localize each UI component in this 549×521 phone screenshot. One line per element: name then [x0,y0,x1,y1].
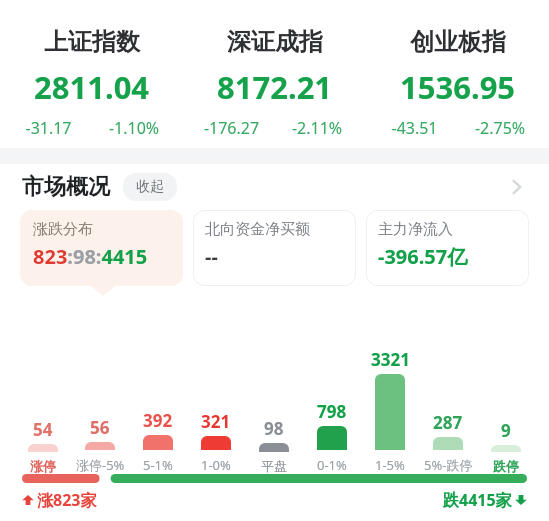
staticText: 98 [264,417,284,440]
button[interactable]: 深证成指 [183,0,366,148]
staticText: 54 [33,418,53,441]
staticText: 287 [433,411,463,434]
staticText: -43.51 [372,117,457,139]
staticText: 市场概况 [22,173,110,201]
staticText: 创业板指 [410,27,506,57]
button[interactable]: 市场概况 [0,164,549,210]
staticText: 392 [143,409,173,432]
staticText: -31.17 [6,117,91,139]
staticText: 1-5% [375,456,405,474]
staticText: 平盘 [261,458,287,474]
staticText: 56 [90,416,110,439]
button[interactable]: 收起 [123,173,177,201]
staticText: 5-1% [143,456,173,474]
staticText: 9 [501,419,511,442]
staticText: 收起 [136,178,164,196]
staticText: 涨停 [30,458,56,474]
staticText: -2.75% [457,117,543,139]
staticText: 823:98:4415 [33,243,148,270]
staticText: 0-1% [317,456,347,474]
staticText: 3321 [371,348,410,371]
staticText: 北向资金净买额 [205,220,310,239]
button[interactable]: 北向资金净买额 [193,210,356,286]
staticText: 涨跌分布 [33,220,93,239]
staticText: 798 [317,400,347,423]
staticText: 跌停 [493,458,519,474]
staticText: -2.11% [274,117,360,139]
button[interactable]: 主力净流入 [366,210,529,286]
staticText: 8172.21 [217,66,333,108]
staticText: 深证成指 [227,27,323,57]
staticText: -- [205,243,218,270]
staticText: 主力净流入 [378,220,453,239]
button[interactable]: 上证指数 [0,0,183,148]
staticText: 5%-跌停 [424,456,473,474]
staticText: 跌4415家 [443,489,512,511]
staticText: 涨823家 [37,489,97,511]
staticText: 321 [201,410,231,433]
staticText: -396.57亿 [378,243,468,270]
staticText: 1536.95 [400,66,516,108]
staticText: 2811.04 [34,66,150,108]
button[interactable]: 查看更多 [501,171,533,203]
staticText: -1.10% [91,117,177,139]
staticText: 1-0% [201,456,231,474]
staticText: 上证指数 [44,27,140,57]
button[interactable]: 创业板指 [366,0,549,148]
staticText: 涨停-5% [76,456,125,474]
button[interactable]: 涨跌分布 [20,210,183,286]
staticText: -176.27 [189,117,274,139]
